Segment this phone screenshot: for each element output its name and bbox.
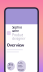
button[interactable]: Continue [17,60,26,72]
staticText: Overview [7,42,24,48]
staticText: Share [8,63,13,70]
staticText: Sophia Lane [12,26,22,33]
staticText: Continue [18,61,24,72]
button[interactable]: Share [7,62,15,70]
staticText: Product designer [12,33,25,40]
